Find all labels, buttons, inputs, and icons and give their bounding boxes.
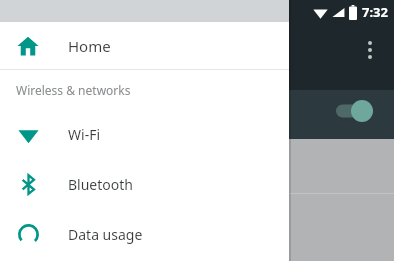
button[interactable]: Home	[0, 22, 289, 69]
button[interactable]: Wi-Fi	[0, 109, 289, 159]
button[interactable]: More options	[354, 34, 386, 66]
staticText: Data usage	[68, 225, 143, 244]
staticText: Home	[68, 36, 111, 56]
button[interactable]: Bluetooth	[0, 159, 289, 209]
staticText: Bluetooth	[68, 175, 133, 194]
staticText: 7:32	[362, 3, 388, 21]
button[interactable]: Toggle	[336, 98, 380, 124]
button[interactable]: Data usage	[0, 209, 289, 259]
staticText: Wi-Fi	[68, 125, 101, 144]
staticText: Wireless & networks	[16, 82, 131, 98]
